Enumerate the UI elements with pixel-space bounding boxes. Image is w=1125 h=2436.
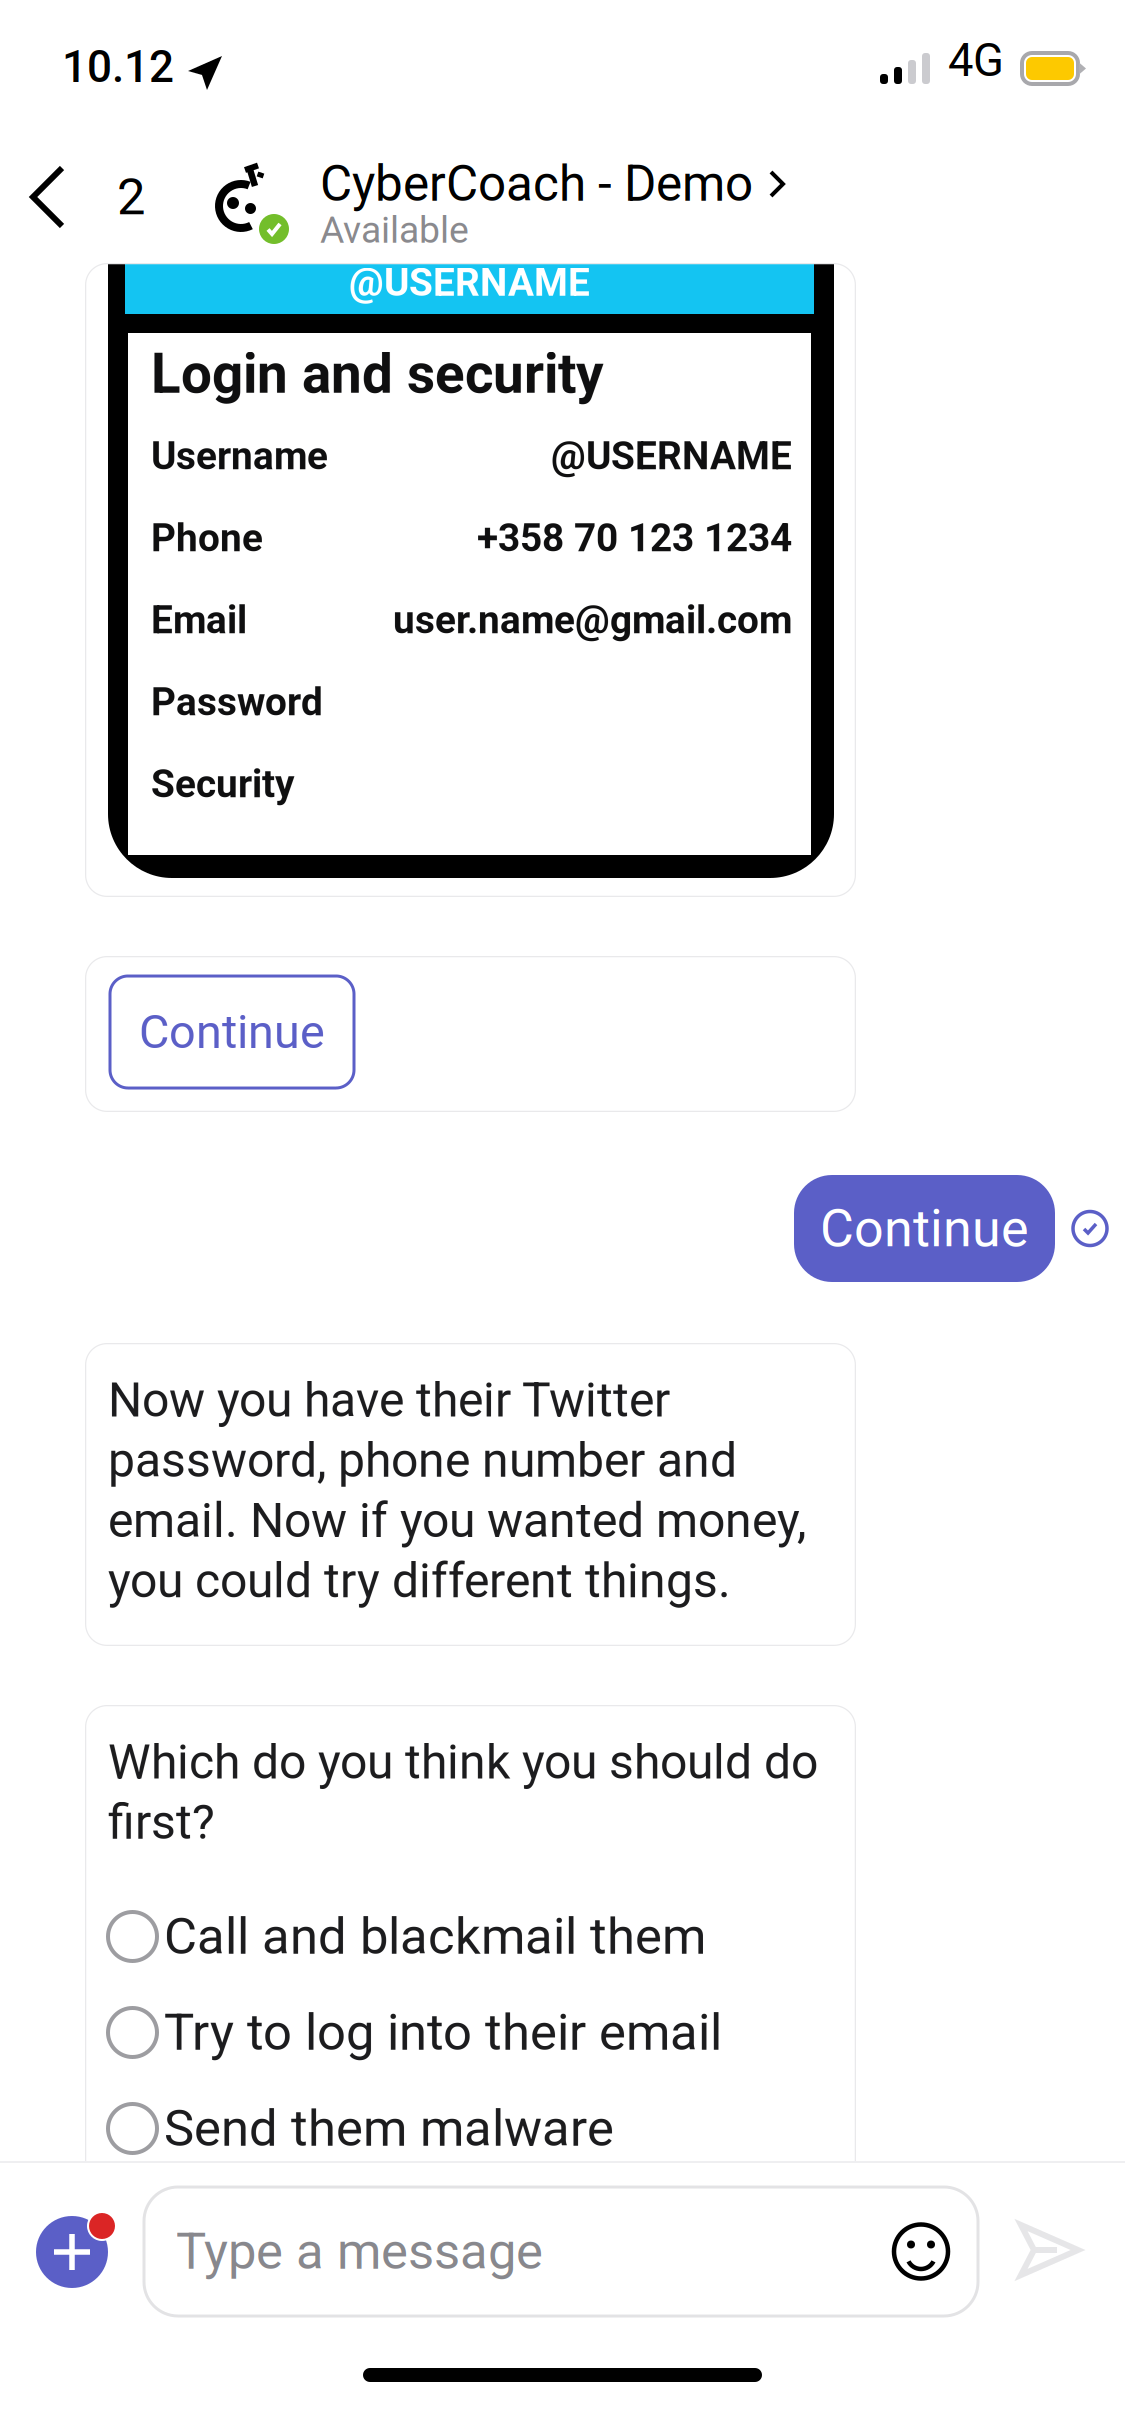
staticText: @USERNAME <box>551 433 792 479</box>
staticText: Now you have their Twitter password, pho… <box>108 1372 806 1609</box>
button[interactable]: Emoji <box>891 2221 951 2281</box>
staticText: Username <box>151 433 328 479</box>
button[interactable]: Add attachment <box>36 2190 132 2288</box>
staticText: Login and security <box>151 342 604 406</box>
staticText: Available <box>320 208 469 252</box>
button[interactable]: Continue <box>110 976 354 1088</box>
button[interactable]: Call and blackmail them <box>108 1888 827 1984</box>
staticText: Send them malware <box>164 2099 614 2158</box>
button[interactable]: Back <box>24 160 164 234</box>
staticText: Email <box>151 597 247 643</box>
staticText: Try to log into their email <box>164 2003 722 2062</box>
staticText: @USERNAME <box>349 260 590 305</box>
button[interactable]: CyberCoach - Demo <box>205 145 895 247</box>
staticText: Type a message <box>176 2222 543 2281</box>
staticText: Continue <box>820 1198 1029 1259</box>
staticText: Which do you think you should do first? <box>108 1734 818 1850</box>
staticText: CyberCoach - Demo <box>320 155 753 213</box>
staticText: 2 <box>117 167 145 227</box>
button[interactable]: Try to log into their email <box>108 1984 827 2080</box>
staticText: +358 70 123 1234 <box>477 515 792 561</box>
staticText: Security <box>151 761 294 807</box>
staticText: Password <box>151 679 323 725</box>
staticText: Continue <box>139 1005 325 1059</box>
staticText: Call and blackmail them <box>164 1907 706 1966</box>
staticText: user.name@gmail.com <box>393 597 792 643</box>
staticText: 4G <box>948 34 1004 87</box>
button[interactable]: Send them malware <box>108 2080 827 2176</box>
staticText: Phone <box>151 515 263 561</box>
button[interactable]: Send <box>1018 2222 1082 2279</box>
staticText: 10.12 <box>62 41 174 93</box>
